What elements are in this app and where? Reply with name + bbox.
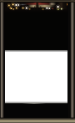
button[interactable]: Framed artwork: [0, 0, 75, 123]
